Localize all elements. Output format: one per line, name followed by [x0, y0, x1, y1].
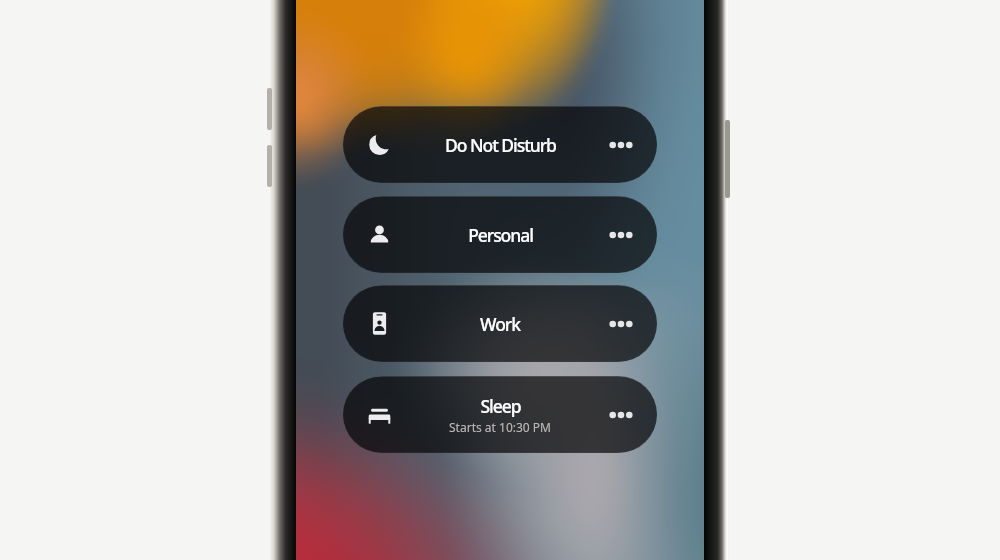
staticText: Work [480, 312, 520, 336]
staticText: Starts at 10:30 PM [449, 419, 551, 435]
button[interactable]: Personal [343, 196, 657, 273]
staticText: Do Not Disturb [445, 133, 556, 157]
button[interactable]: More options [605, 399, 637, 431]
button[interactable]: More options [605, 308, 637, 340]
button[interactable]: Sleep [343, 376, 657, 453]
button[interactable]: More options [605, 219, 637, 251]
button[interactable]: More options [605, 129, 637, 161]
staticText: Sleep [480, 394, 521, 418]
button[interactable]: Work [343, 285, 657, 362]
button[interactable]: Do Not Disturb [343, 106, 657, 183]
staticText: Personal [468, 223, 533, 247]
